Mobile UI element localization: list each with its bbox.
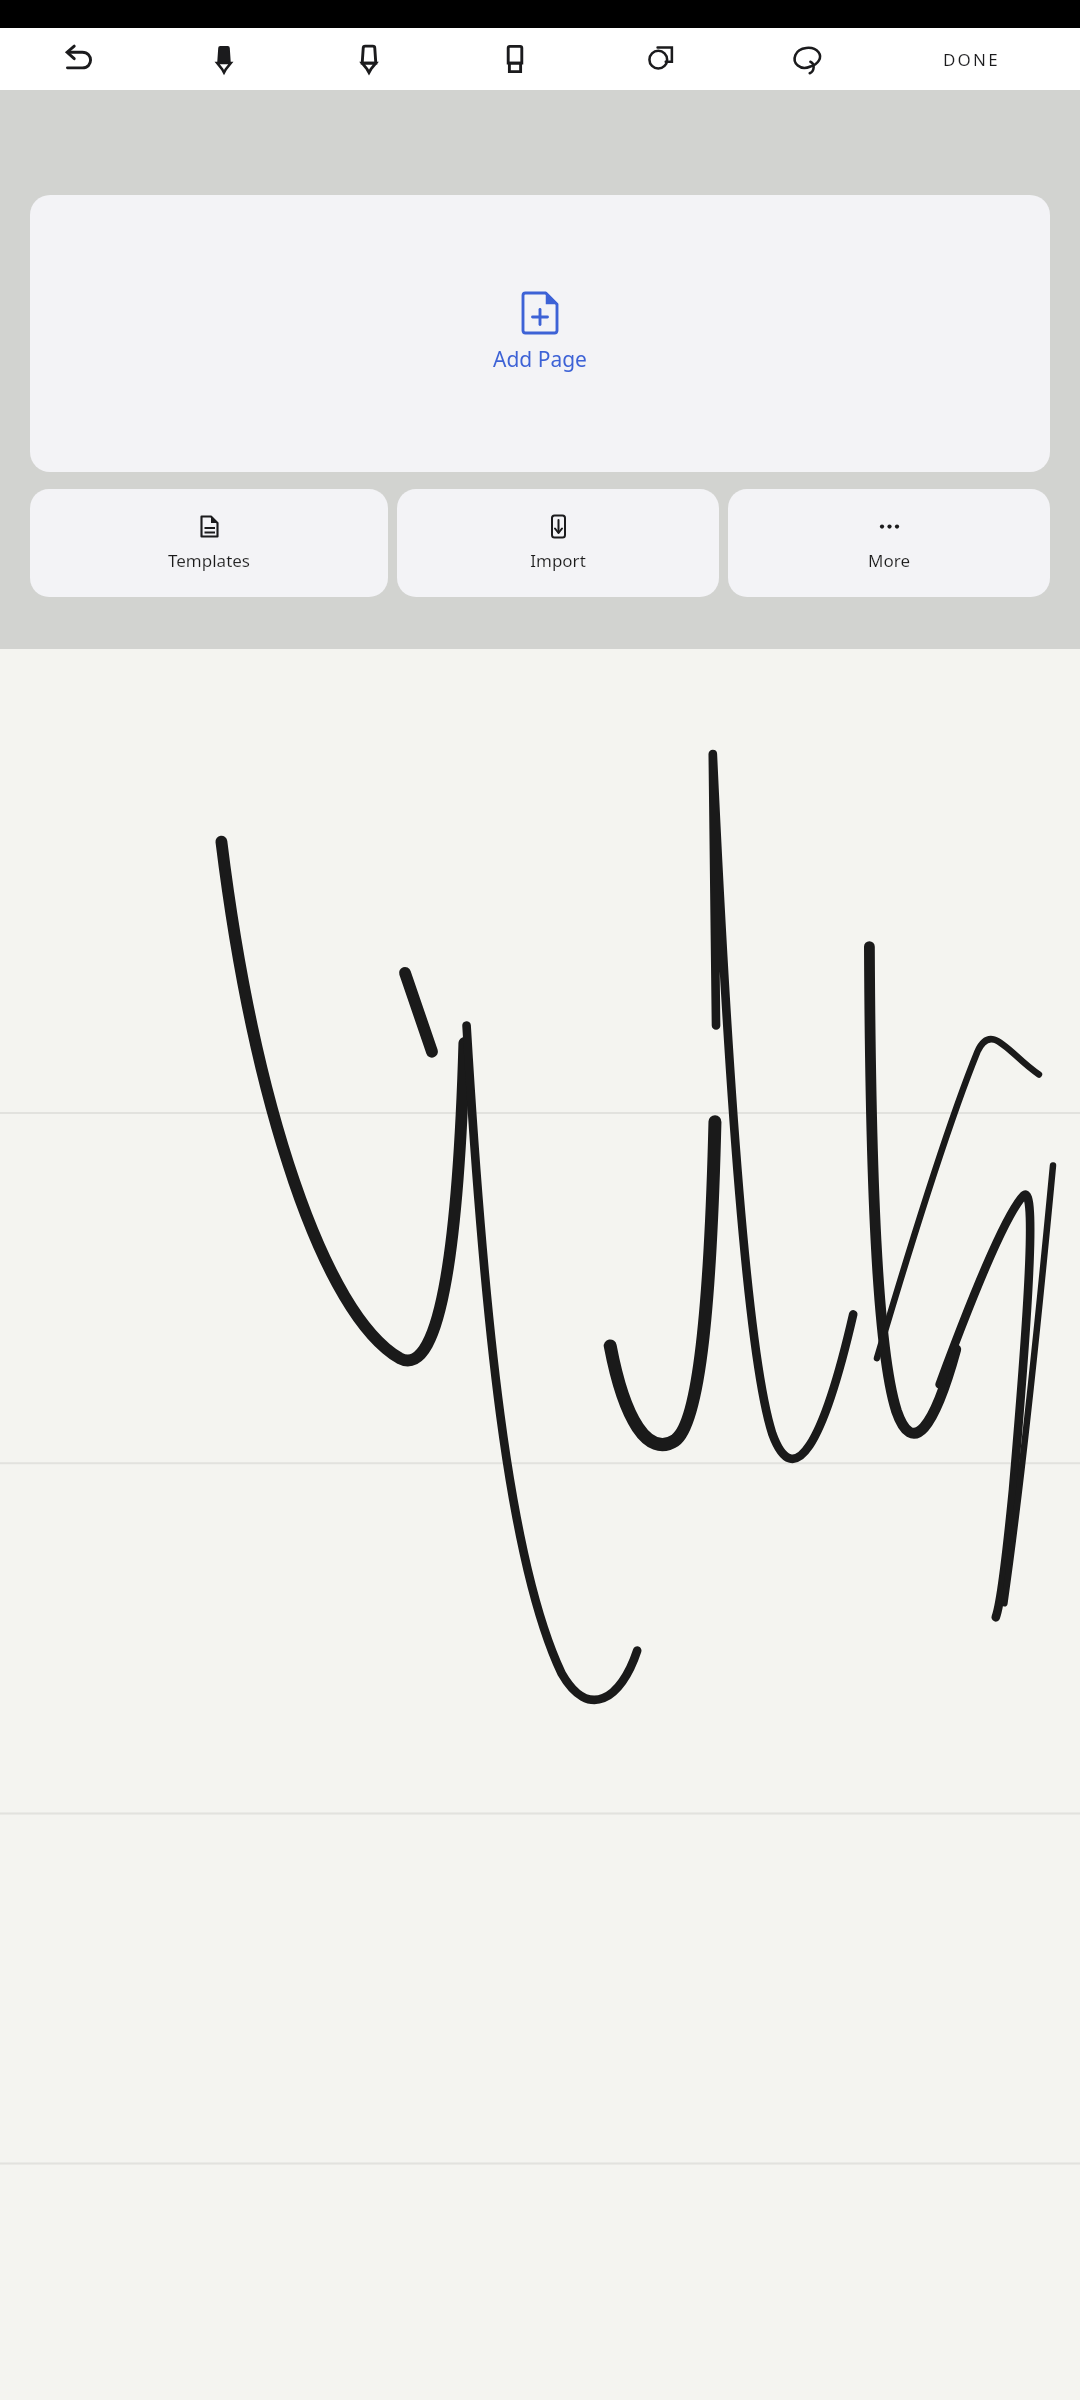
staticText: Templates [168, 549, 250, 572]
button[interactable]: DONE [880, 28, 1062, 90]
button[interactable]: Shape [588, 28, 734, 90]
staticText: More [868, 549, 910, 572]
button[interactable]: Highlighter [296, 28, 442, 90]
button[interactable]: Eraser [442, 28, 588, 90]
staticText: DONE [943, 48, 1000, 71]
button[interactable]: Templates [30, 489, 388, 597]
staticText: Import [530, 549, 586, 572]
button[interactable]: Lasso [734, 28, 880, 90]
button[interactable]: More [728, 489, 1050, 597]
staticText: Add Page [493, 345, 587, 374]
button[interactable]: Import [397, 489, 719, 597]
button[interactable]: Undo [6, 28, 151, 90]
button[interactable]: Pen [151, 28, 296, 90]
button[interactable]: Add Page [30, 195, 1050, 472]
